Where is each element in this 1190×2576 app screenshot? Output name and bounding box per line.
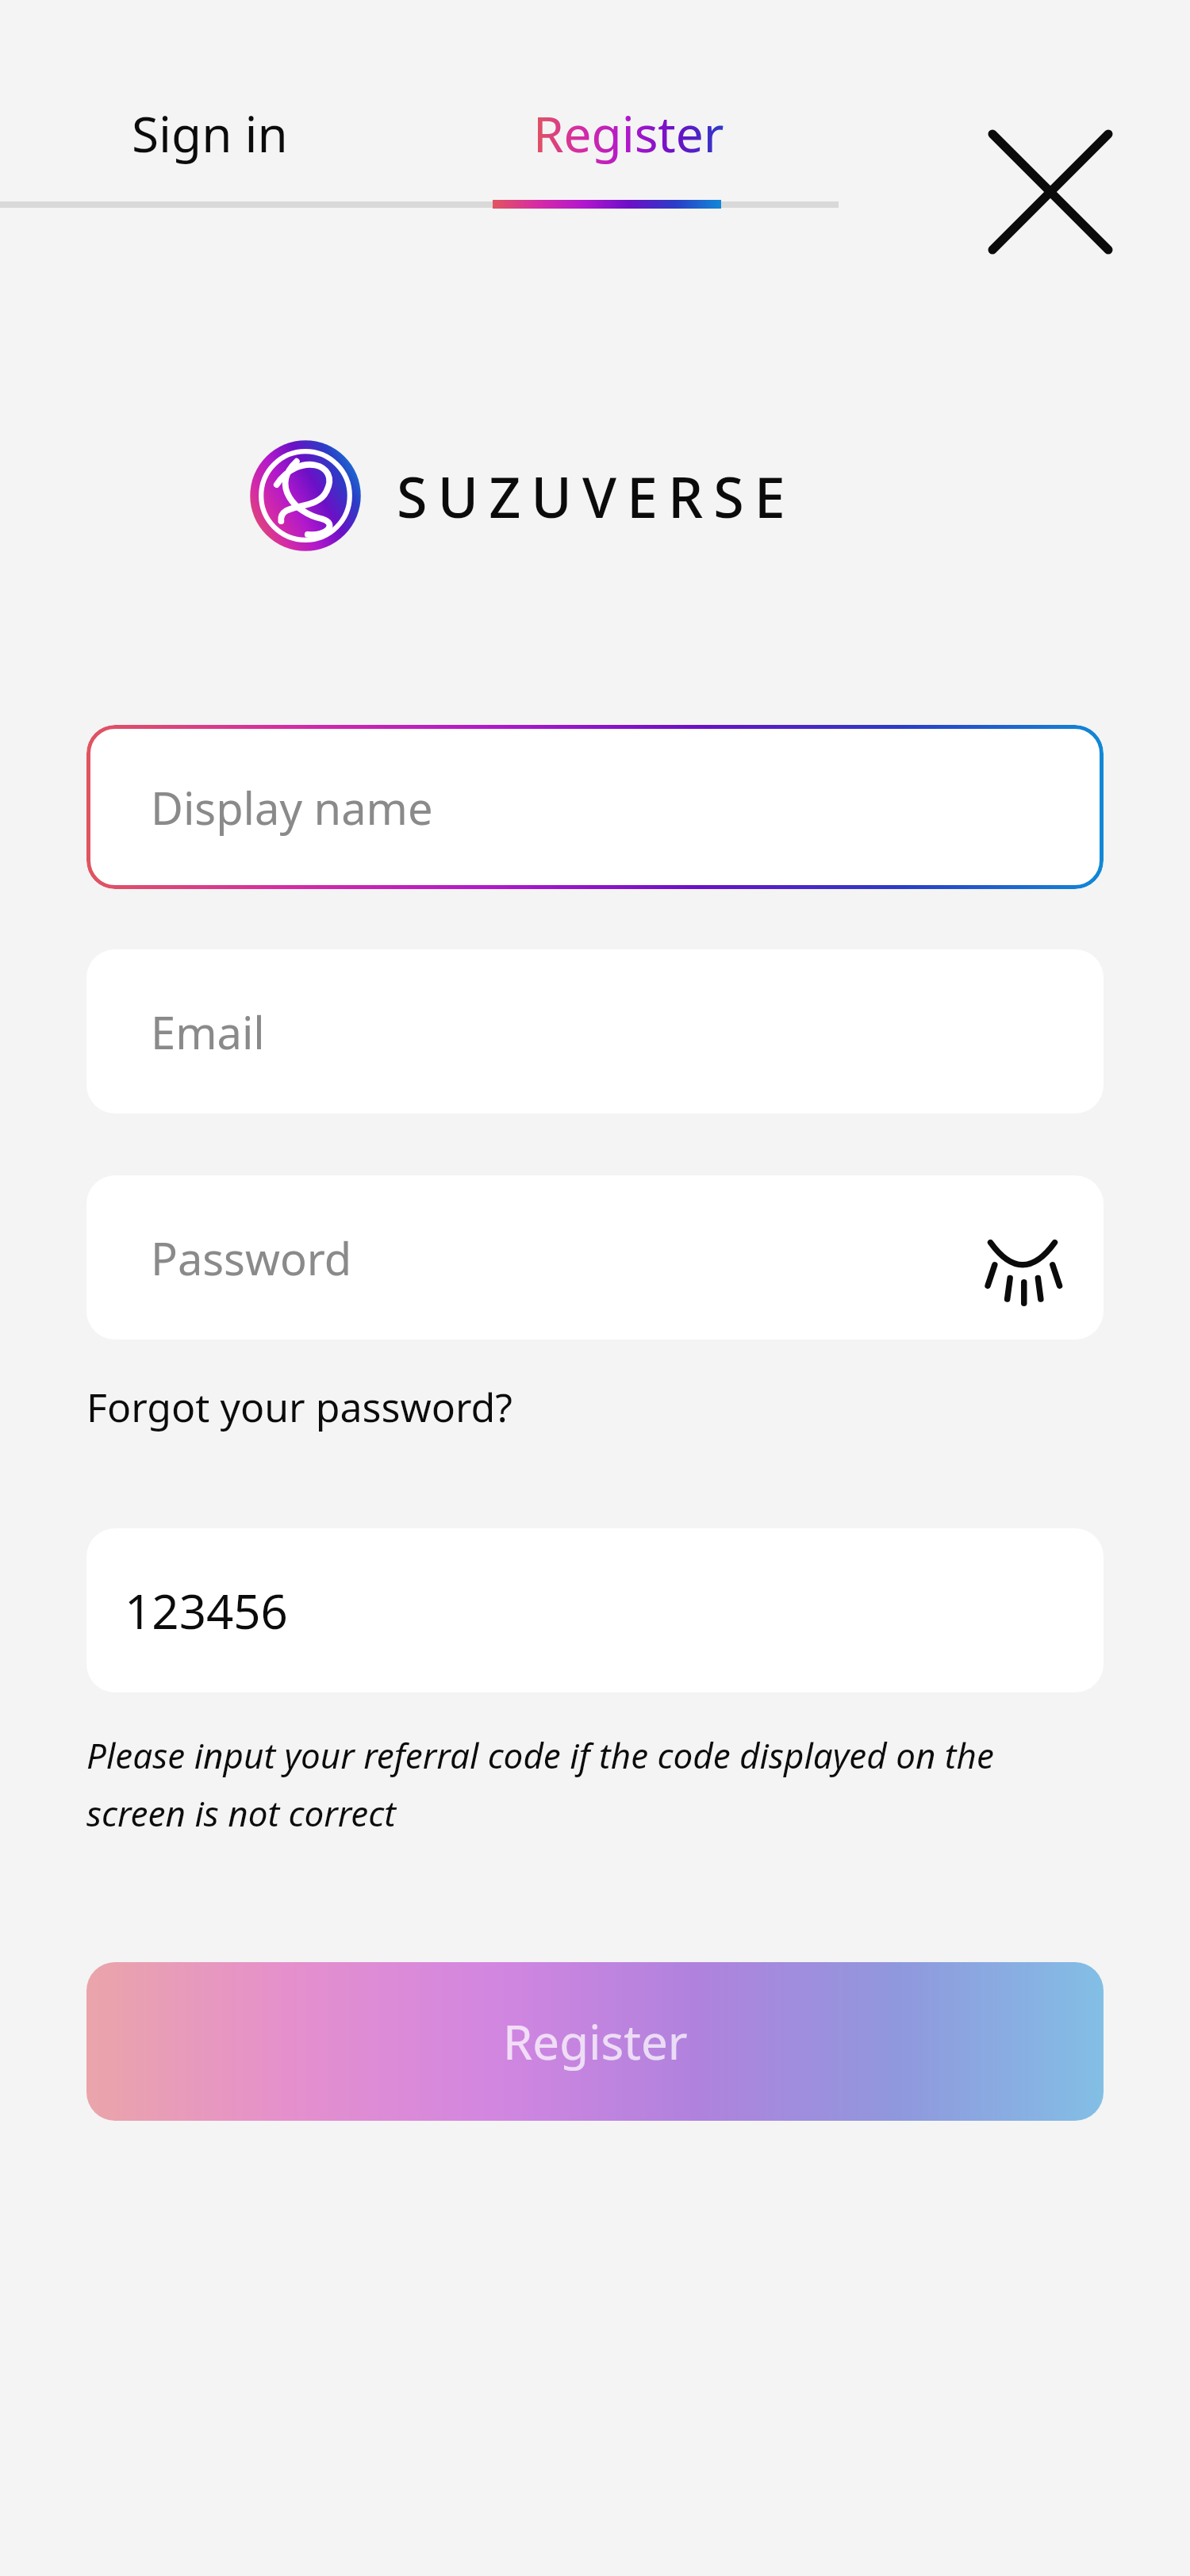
button[interactable]: Email [86, 949, 1104, 1114]
staticText: Register [533, 100, 724, 167]
staticText: Password [151, 1228, 352, 1288]
button[interactable]: Register [86, 1962, 1104, 2121]
staticText: 123456 [125, 1578, 288, 1643]
button[interactable]: Display name [86, 725, 1104, 889]
button[interactable]: Register [419, 63, 839, 203]
staticText: Forgot your password? [86, 1380, 513, 1434]
staticText: Register [503, 2009, 688, 2074]
staticText: SUZUVERSE [397, 458, 796, 534]
button[interactable]: Forgot your password? [86, 1374, 513, 1439]
staticText: Please input your referral code if the c… [86, 1731, 1096, 1836]
staticText: Sign in [132, 100, 288, 167]
staticText: Display name [151, 777, 433, 838]
button[interactable]: Close [970, 112, 1130, 272]
button[interactable]: Password [86, 1175, 1104, 1340]
button[interactable]: Show password [975, 1210, 1070, 1305]
staticText: Email [151, 1002, 265, 1062]
button[interactable]: Sign in [0, 63, 419, 203]
button[interactable]: 123456 [86, 1528, 1104, 1692]
